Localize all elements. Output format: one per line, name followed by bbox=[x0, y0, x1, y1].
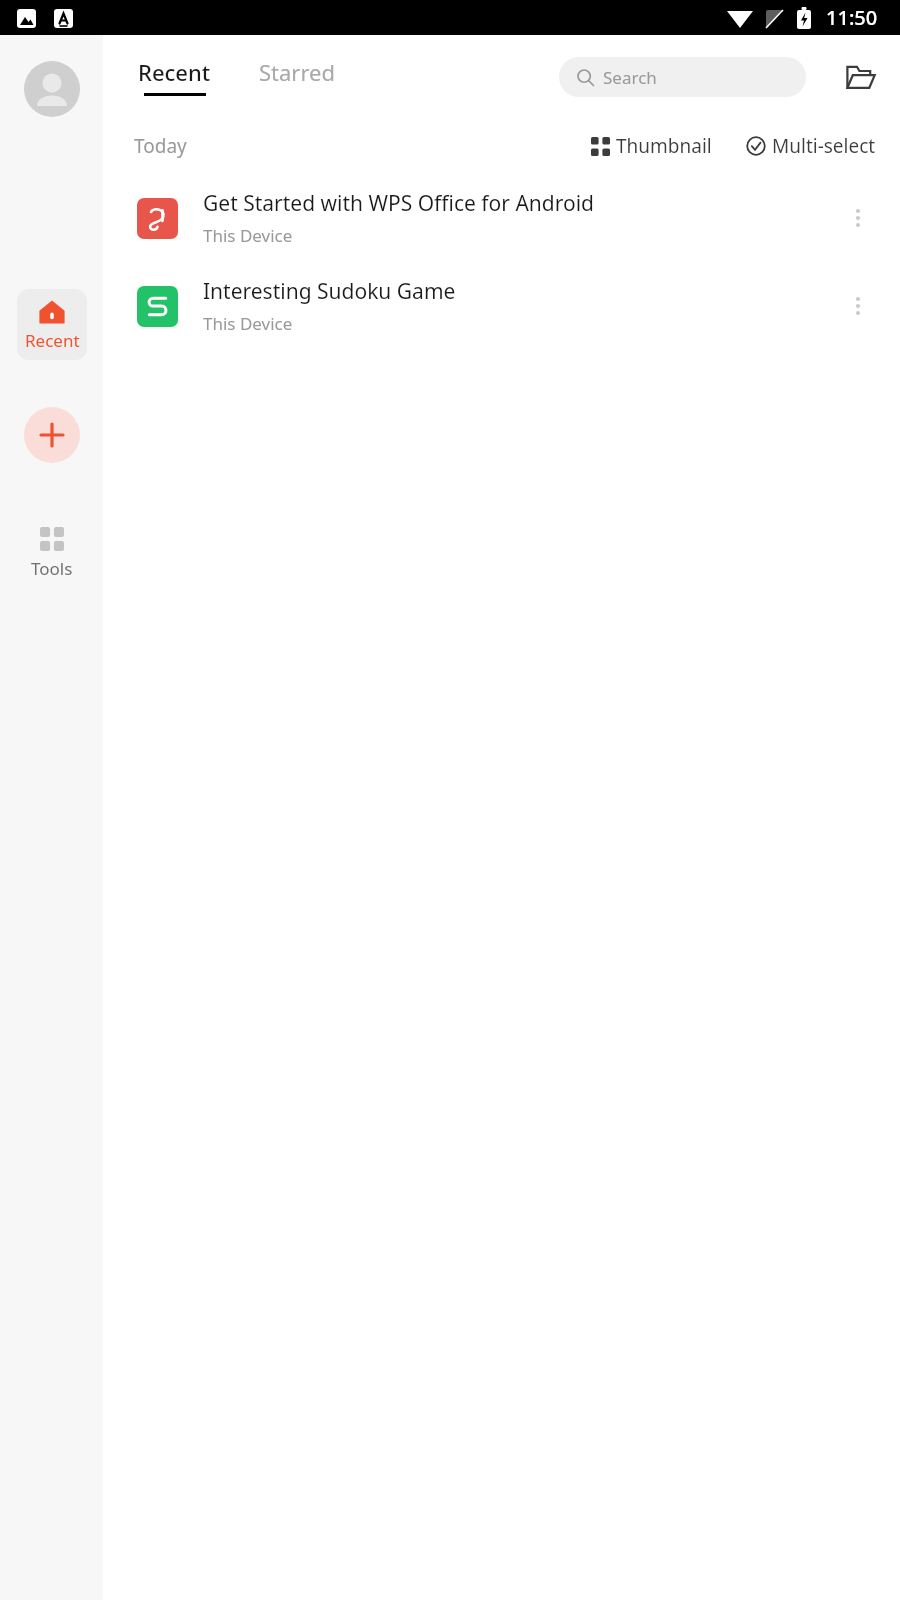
button[interactable]: New bbox=[24, 407, 80, 463]
staticText: Recent bbox=[25, 329, 80, 352]
button[interactable]: Account bbox=[24, 61, 80, 117]
button[interactable]: Interesting Sudoku Game bbox=[103, 262, 900, 350]
button[interactable]: More options bbox=[836, 284, 880, 328]
staticText: This Device bbox=[203, 312, 293, 335]
button[interactable]: Search bbox=[559, 57, 806, 97]
button[interactable]: Recent bbox=[17, 289, 87, 360]
staticText: Multi-select bbox=[772, 133, 876, 159]
staticText: 11:50 bbox=[826, 4, 878, 31]
staticText: Today bbox=[134, 133, 187, 159]
button[interactable]: Tools bbox=[17, 521, 87, 586]
button[interactable]: Multi-select bbox=[742, 127, 880, 165]
button[interactable]: Get Started with WPS Office for Android bbox=[103, 174, 900, 262]
staticText: Search bbox=[603, 66, 657, 89]
button[interactable]: Open folder bbox=[840, 57, 880, 97]
staticText: Interesting Sudoku Game bbox=[203, 277, 456, 306]
button[interactable]: Starred bbox=[255, 53, 340, 100]
staticText: This Device bbox=[203, 224, 293, 247]
staticText: Tools bbox=[31, 557, 73, 580]
staticText: Thumbnail bbox=[616, 133, 712, 159]
button[interactable]: More options bbox=[836, 196, 880, 240]
button[interactable]: Thumbnail bbox=[587, 127, 716, 165]
staticText: Recent bbox=[138, 57, 211, 87]
button[interactable]: Recent bbox=[134, 57, 215, 96]
staticText: Starred bbox=[259, 57, 336, 87]
staticText: Get Started with WPS Office for Android bbox=[203, 189, 595, 218]
